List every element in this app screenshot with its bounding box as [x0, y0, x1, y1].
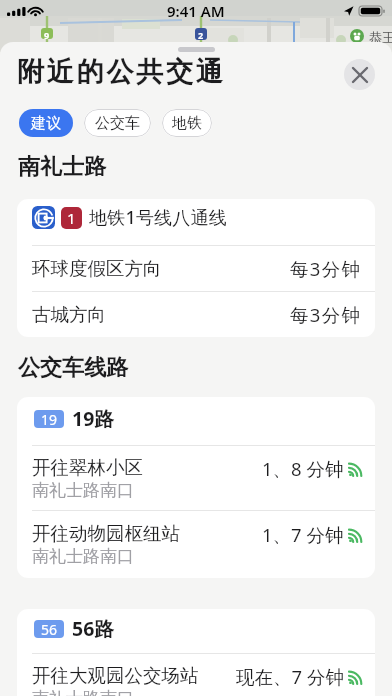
staticText: 地铁	[172, 114, 202, 133]
staticText: 环球度假区方向	[32, 257, 290, 280]
staticText: 开往动物园枢纽站	[32, 522, 180, 545]
staticText: 9:41 AM	[167, 1, 225, 21]
staticText: 南礼士路南口	[32, 480, 134, 501]
staticText: 现在、7 分钟	[236, 664, 344, 689]
staticText: 2	[198, 29, 204, 41]
staticText: 附近的公共交通	[17, 55, 226, 89]
button[interactable]: 开往翠林小区	[17, 446, 375, 510]
button[interactable]: 开往动物园枢纽站	[17, 511, 375, 578]
staticText: 每3分钟	[290, 302, 362, 327]
staticText: 恭王	[369, 29, 392, 45]
button[interactable]: 19	[17, 397, 375, 445]
staticText: 公交车线路	[18, 354, 129, 382]
staticText: 19	[41, 410, 58, 428]
staticText: 建议	[31, 114, 61, 133]
button[interactable]: 1	[17, 199, 375, 245]
staticText: 南礼士路南口	[32, 546, 134, 567]
staticText: 19路	[72, 405, 114, 432]
staticText: 56	[41, 620, 58, 638]
staticText: 1、8 分钟	[262, 456, 344, 481]
staticText: 每3分钟	[290, 256, 362, 281]
button[interactable]: 建议	[19, 109, 73, 137]
staticText: 开往翠林小区	[32, 456, 143, 479]
button[interactable]: 开往大观园公交场站	[17, 654, 375, 696]
button[interactable]: 古城方向	[17, 292, 375, 337]
staticText: 1	[67, 208, 76, 228]
staticText: 古城方向	[32, 303, 290, 326]
staticText: 1、7 分钟	[262, 522, 344, 547]
button[interactable]: 56	[17, 609, 375, 653]
staticText: 公交车	[95, 114, 140, 133]
button[interactable]: 环球度假区方向	[17, 246, 375, 291]
staticText: 地铁1号线八通线	[89, 205, 227, 230]
staticText: 南礼士路	[18, 153, 107, 181]
button[interactable]: 地铁	[162, 109, 212, 137]
button[interactable]: Close	[344, 59, 375, 90]
staticText: 9	[44, 29, 50, 41]
staticText: 56路	[72, 615, 114, 642]
button[interactable]: 公交车	[84, 109, 151, 137]
staticText: 开往大观园公交场站	[32, 664, 199, 687]
staticText: 南礼士路南口	[32, 688, 134, 696]
